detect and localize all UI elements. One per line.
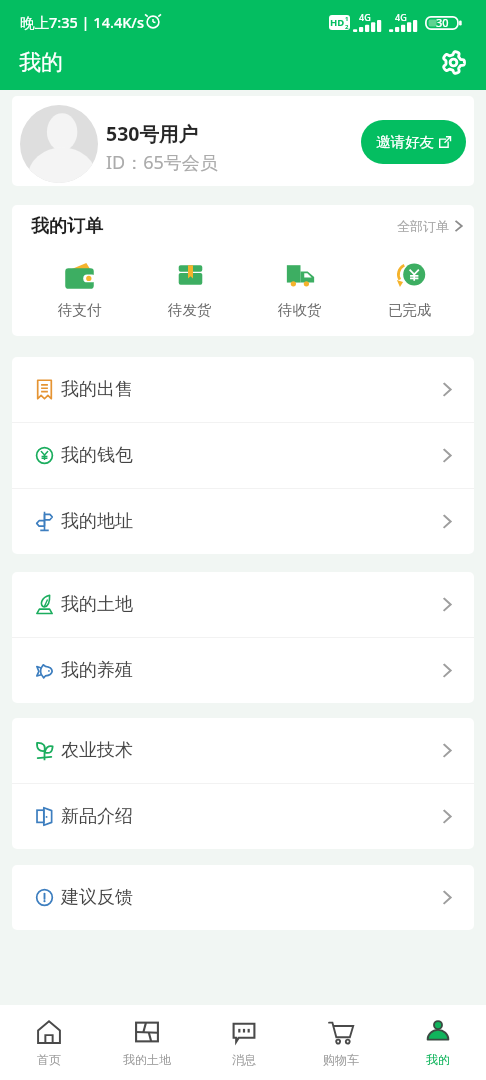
button[interactable]: 首页 [0,1005,98,1080]
button[interactable]: 邀请好友 [361,120,466,164]
staticText: 待发货 [168,301,212,319]
button[interactable]: 我的 [389,1005,486,1080]
staticText: 530号用户 [106,120,198,147]
staticText: 4G [395,11,407,23]
staticText: 邀请好友 [376,133,434,151]
button[interactable]: 我的地址 [12,489,474,554]
button[interactable]: 消息 [195,1005,292,1080]
staticText: 1 [345,15,349,23]
button[interactable]: 待收货 [245,257,355,321]
staticText: 我的土地 [61,593,133,616]
staticText: 待支付 [58,301,102,319]
staticText: 我的钱包 [61,444,133,467]
staticText: 消息 [232,1052,256,1067]
staticText: 我的出售 [61,378,133,401]
staticText: 新品介绍 [61,805,133,828]
staticText: 已完成 [388,301,432,319]
staticText: HD [330,16,345,29]
staticText: 我的养殖 [61,659,133,682]
button[interactable]: 全部订单 [391,214,469,238]
staticText: 我的订单 [31,215,103,238]
staticText: 购物车 [323,1052,359,1067]
button[interactable]: 建议反馈 [12,865,474,930]
button[interactable]: 我的钱包 [12,423,474,488]
button[interactable]: 我的出售 [12,357,474,422]
staticText: 首页 [37,1052,61,1067]
button[interactable]: 购物车 [292,1005,389,1080]
button[interactable]: 新品介绍 [12,784,474,849]
button[interactable]: 我的土地 [12,572,474,637]
button[interactable]: 530号用户 [12,96,474,186]
button[interactable]: 我的养殖 [12,638,474,703]
staticText: 我的 [19,49,63,77]
staticText: 30 [436,15,449,30]
staticText: 农业技术 [61,739,133,762]
staticText: 4G [359,11,371,23]
button[interactable]: 待支付 [24,257,135,321]
staticText: 晚上7:35 | 14.4K/s [20,12,144,32]
staticText: 建议反馈 [61,886,133,909]
staticText: 全部订单 [397,218,449,234]
button[interactable]: 我的土地 [98,1005,195,1080]
staticText: 我的土地 [123,1052,171,1067]
staticText: ID：65号会员 [106,150,218,175]
staticText: 我的 [426,1052,450,1067]
button[interactable]: 待发货 [135,257,245,321]
staticText: 待收货 [278,301,322,319]
button[interactable]: 已完成 [355,257,465,321]
button[interactable]: Settings [438,47,468,77]
staticText: 2 [345,23,349,30]
staticText: 我的地址 [61,510,133,533]
button[interactable]: 农业技术 [12,718,474,783]
